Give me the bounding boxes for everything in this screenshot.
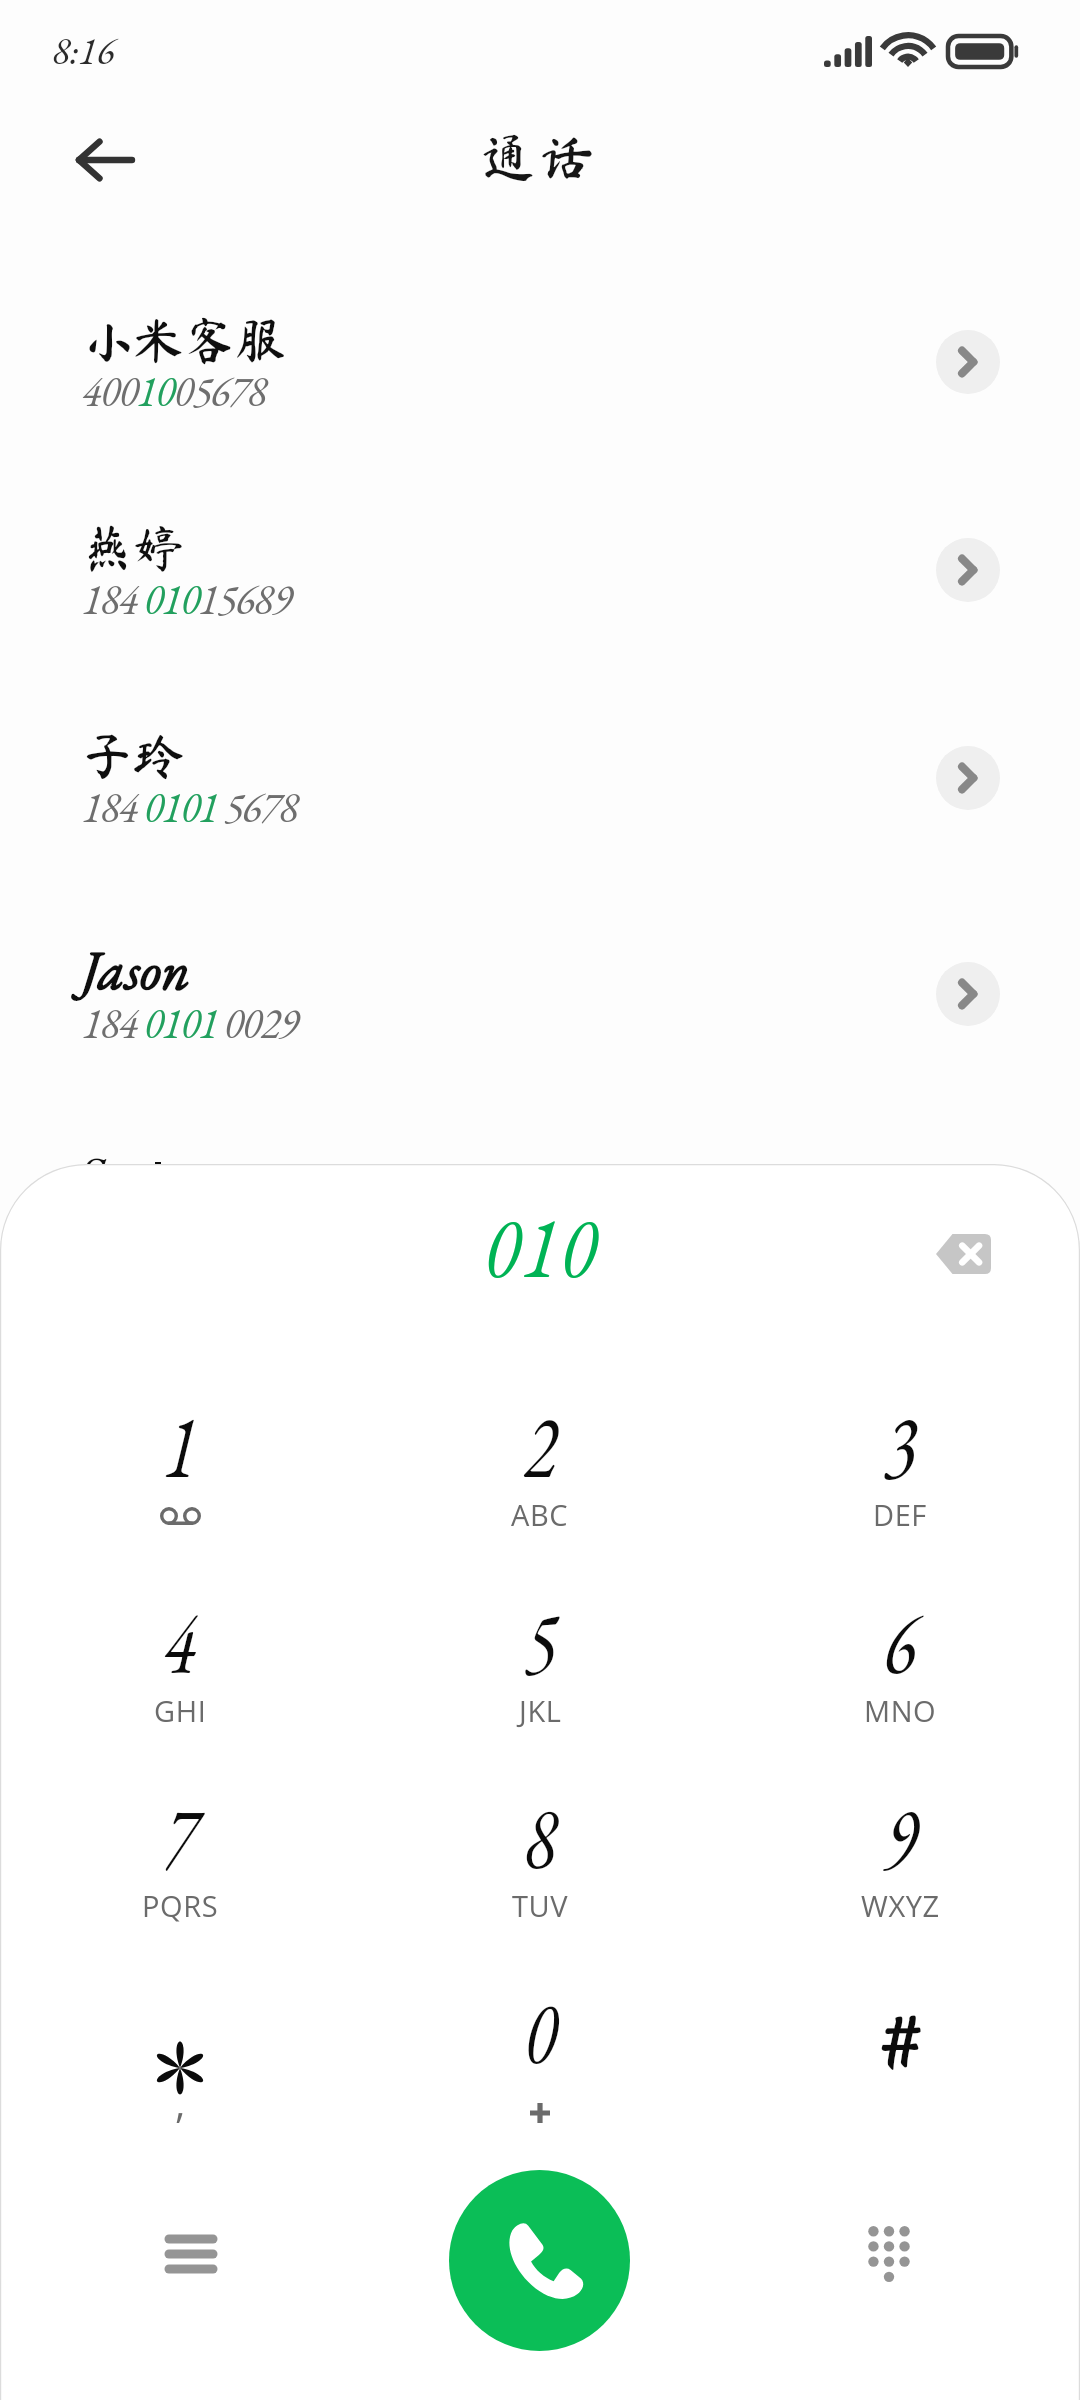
staticText: 5 (523, 1582, 558, 1699)
staticText: WXYZ (861, 1886, 940, 1925)
button[interactable]: 0 (420, 1973, 660, 2163)
staticText: , (175, 2075, 186, 2129)
button[interactable]: Contact details (936, 746, 1000, 810)
button[interactable]: 8 (420, 1778, 660, 1968)
button[interactable]: , (60, 1973, 300, 2163)
button[interactable]: Back (62, 120, 154, 200)
staticText: 小米客服 (82, 314, 287, 365)
staticText: 2 (523, 1386, 558, 1503)
button[interactable]: 2 (420, 1387, 660, 1577)
staticText: 燕婷 (82, 522, 185, 573)
staticText: DEF (873, 1495, 927, 1534)
staticText: 通话 (481, 129, 599, 183)
button[interactable]: 7 (60, 1778, 300, 1968)
staticText: 1 (163, 1386, 198, 1503)
button[interactable]: Contact details (936, 962, 1000, 1026)
staticText: 0 (523, 1972, 558, 2089)
staticText: TUV (512, 1886, 569, 1925)
button[interactable]: # (780, 1973, 1020, 2163)
staticText: MNO (864, 1691, 937, 1730)
staticText: 8 (523, 1777, 558, 1894)
staticText: ABC (511, 1495, 569, 1534)
staticText: 184 0101 0029 (82, 996, 298, 1051)
staticText: 4 (163, 1582, 198, 1699)
staticText: 010 (483, 1188, 598, 1302)
button[interactable]: 小米客服 (0, 252, 1080, 438)
staticText: PQRS (142, 1886, 219, 1925)
button[interactable]: 4 (60, 1583, 300, 1773)
staticText: 7 (163, 1777, 198, 1894)
button[interactable]: Backspace (903, 1206, 1023, 1302)
staticText: 4001005678 (82, 364, 266, 419)
button[interactable]: Contact details (936, 330, 1000, 394)
staticText: 8:16 (52, 26, 115, 76)
staticText: 子玲 (82, 730, 185, 781)
staticText: 184 01015689 (82, 572, 291, 627)
button[interactable]: 5 (420, 1583, 660, 1773)
button[interactable]: Call log (136, 2206, 246, 2302)
staticText: GHI (154, 1691, 207, 1730)
staticText: 3 (883, 1386, 918, 1503)
button[interactable]: 燕婷 (0, 460, 1080, 646)
staticText: 9 (883, 1777, 918, 1894)
staticText: 6 (883, 1582, 918, 1699)
button[interactable]: Keypad (838, 2203, 940, 2303)
button[interactable]: 9 (780, 1778, 1020, 1968)
button[interactable]: 子玲 (0, 668, 1080, 854)
staticText: Jason (82, 934, 191, 1006)
button[interactable]: 3 (780, 1387, 1020, 1577)
button[interactable]: Contact details (936, 538, 1000, 602)
button[interactable]: 6 (780, 1583, 1020, 1773)
staticText: Sweets (78, 1140, 205, 1210)
staticText: JKL (519, 1691, 562, 1730)
button[interactable]: Jason (0, 884, 1080, 1070)
staticText: # (880, 2000, 921, 2088)
button[interactable]: 1 (60, 1387, 300, 1577)
staticText: 184 0101 5678 (82, 780, 298, 835)
button[interactable]: Call (449, 2170, 630, 2351)
